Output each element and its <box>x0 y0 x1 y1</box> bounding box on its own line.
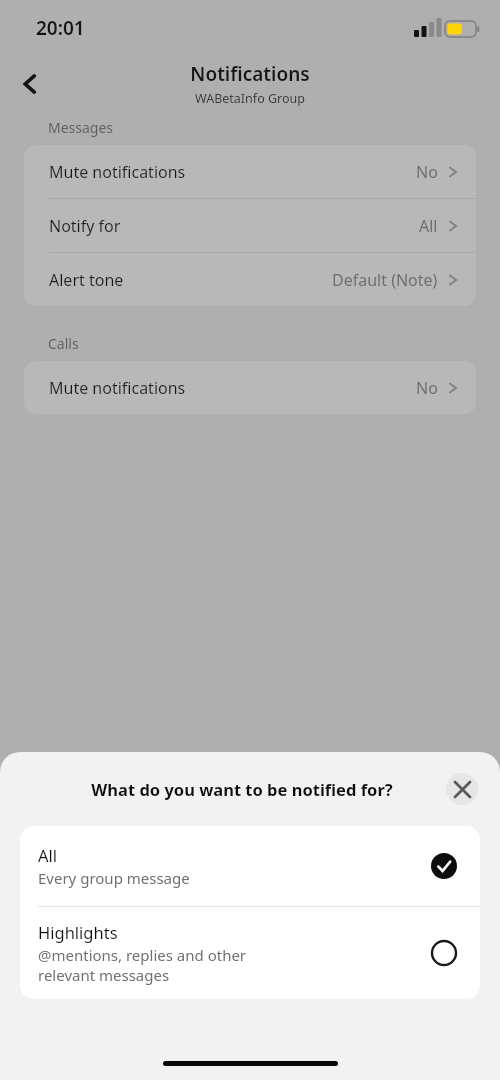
staticText: No <box>416 377 438 399</box>
staticText: No <box>416 161 438 183</box>
staticText: Mute notifications <box>49 377 186 399</box>
staticText: Alert tone <box>49 269 124 291</box>
button[interactable]: Back <box>6 60 54 108</box>
button[interactable]: Alert tone <box>24 253 476 306</box>
button[interactable]: Mute notifications <box>24 145 476 198</box>
button[interactable]: Notify for <box>24 199 476 252</box>
button[interactable]: Mute notifications <box>24 361 476 414</box>
staticText: Mute notifications <box>49 161 186 183</box>
staticText: Calls <box>48 334 79 353</box>
button[interactable]: Close <box>446 773 478 805</box>
staticText: WABetaInfo Group <box>195 90 305 107</box>
staticText: @mentions, replies and other relevant me… <box>38 945 247 985</box>
staticText: Every group message <box>38 868 190 888</box>
staticText: Messages <box>48 118 114 137</box>
staticText: Notifications <box>190 61 310 87</box>
staticText: What do you want to be notified for? <box>91 778 393 800</box>
staticText: All <box>38 844 58 866</box>
staticText: Default (Note) <box>332 269 438 291</box>
staticText: All <box>419 215 438 237</box>
staticText: 20:01 <box>36 15 85 41</box>
button[interactable]: Highlights <box>20 907 480 999</box>
staticText: Notify for <box>49 215 121 237</box>
staticText: Highlights <box>38 921 118 943</box>
button[interactable]: All <box>20 826 480 906</box>
